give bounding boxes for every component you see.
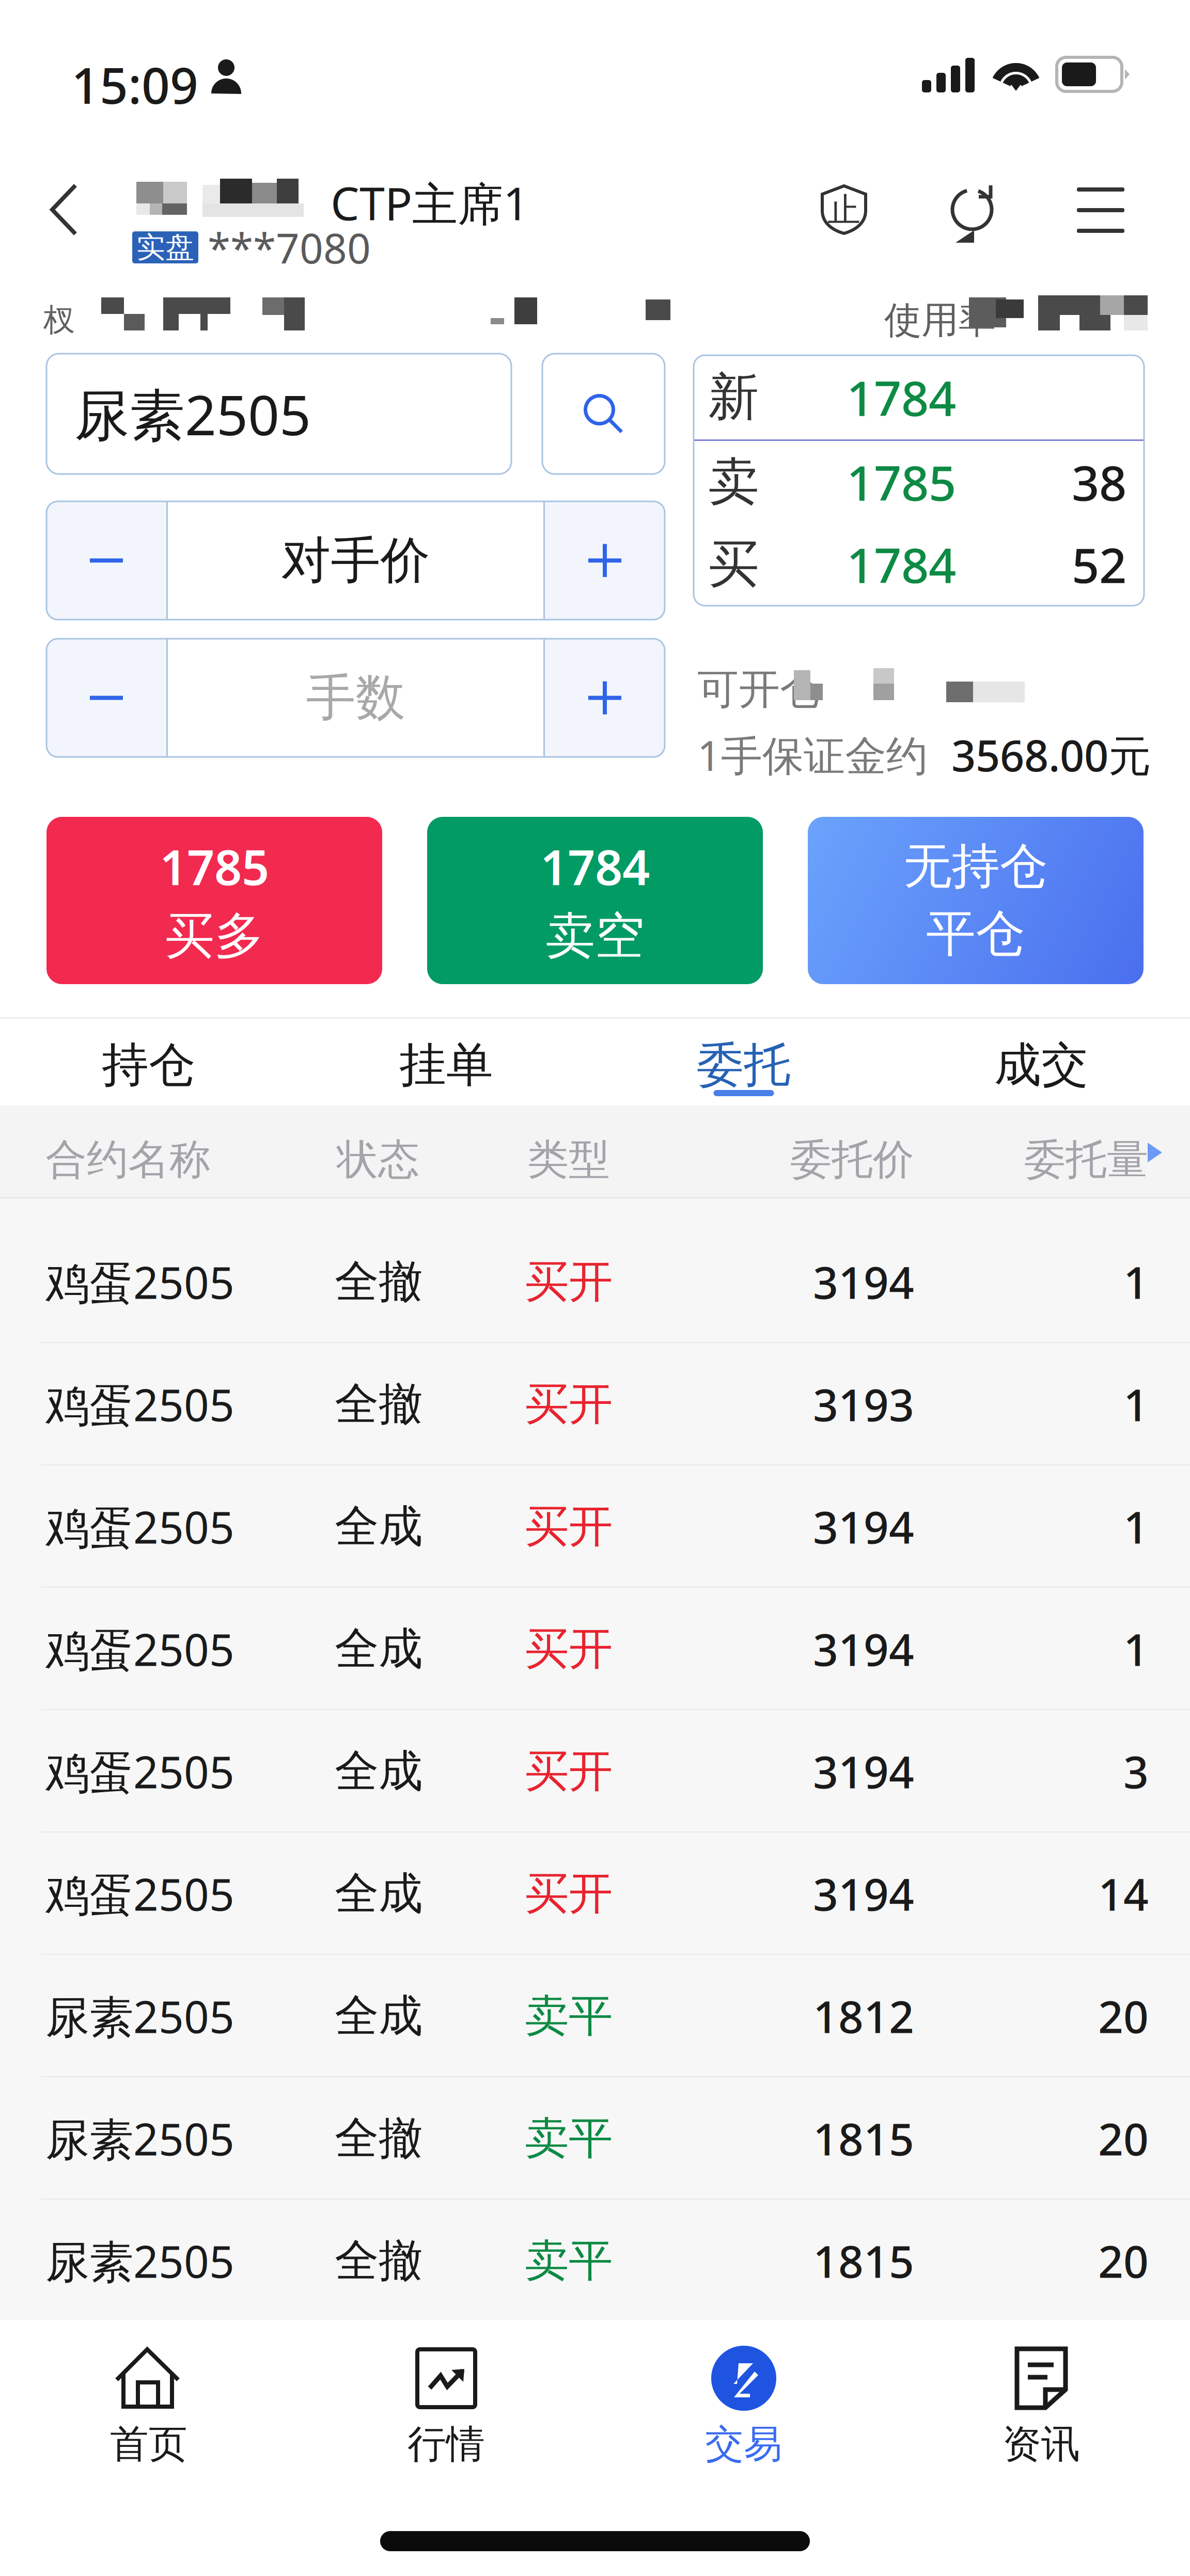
button[interactable]: 1785	[46, 817, 382, 984]
button[interactable]: 资讯	[892, 2320, 1190, 2495]
staticText: 1812	[813, 1987, 914, 2045]
button[interactable]: Decrease	[46, 501, 166, 620]
staticText: 全成	[335, 1989, 422, 2043]
staticText: 全撤	[335, 1255, 422, 1309]
button[interactable]: 鸡蛋2505	[0, 1710, 1190, 1832]
staticText: 尿素2505	[45, 2232, 234, 2290]
staticText: 14	[1098, 1864, 1149, 1923]
staticText: 3194	[813, 1864, 914, 1923]
button[interactable]: 行情	[297, 2320, 595, 2495]
staticText: 使用率	[884, 297, 996, 343]
button[interactable]: Refresh	[939, 170, 1008, 257]
button[interactable]: 无持仓	[808, 817, 1144, 984]
staticText: 对手价	[281, 530, 430, 591]
staticText: 38	[1072, 450, 1126, 514]
staticText: 无持仓	[904, 837, 1048, 896]
staticText: 成交	[994, 1036, 1088, 1094]
staticText: ***7080	[208, 220, 371, 275]
button[interactable]: Menu	[1062, 173, 1139, 247]
button[interactable]: 委托	[595, 1019, 892, 1105]
staticText: 鸡蛋2505	[45, 1497, 234, 1556]
staticText: 实盘	[136, 230, 194, 265]
staticText: 1815	[813, 2109, 914, 2168]
button[interactable]: 鸡蛋2505	[0, 1465, 1190, 1588]
staticText: 买	[708, 533, 759, 596]
staticText: 1	[1123, 1620, 1149, 1678]
staticText: 状态	[337, 1134, 419, 1185]
staticText: 20	[1098, 2232, 1149, 2290]
staticText: 类型	[527, 1134, 610, 1185]
staticText: 新	[708, 366, 759, 429]
staticText: 行情	[408, 2421, 485, 2468]
button[interactable]: Decrease	[46, 639, 166, 757]
button[interactable]: 1784	[427, 817, 763, 984]
staticText: 鸡蛋2505	[45, 1864, 234, 1923]
button[interactable]: Back	[33, 168, 95, 251]
staticText: 全撤	[335, 2111, 422, 2165]
staticText: 1手保证金约	[697, 727, 928, 782]
staticText: 买多	[165, 906, 264, 967]
staticText: 资讯	[1003, 2421, 1080, 2468]
button[interactable]: 鸡蛋2505	[0, 1832, 1190, 1955]
staticText: 买开	[525, 1622, 613, 1676]
staticText: 全成	[335, 1744, 422, 1798]
staticText: 买开	[525, 1377, 613, 1431]
staticText: 卖空	[545, 906, 645, 967]
staticText: 买开	[525, 1499, 613, 1554]
button[interactable]: Stop loss	[808, 171, 880, 248]
staticText: 买开	[525, 1744, 613, 1798]
button[interactable]: 交易	[595, 2320, 892, 2495]
button[interactable]: 鸡蛋2505	[0, 1343, 1190, 1465]
staticText: 1784	[847, 532, 956, 596]
staticText: CTP主席1	[331, 172, 529, 233]
staticText: 15:09	[71, 52, 198, 117]
staticText: 3194	[813, 1253, 914, 1311]
staticText: 3194	[813, 1497, 914, 1556]
button[interactable]: 鸡蛋2505	[0, 1221, 1190, 1343]
button[interactable]: Search	[542, 354, 665, 474]
staticText: 止	[827, 190, 860, 230]
button[interactable]: 尿素2505	[0, 2077, 1190, 2200]
button[interactable]: 尿素2505	[0, 1955, 1190, 2077]
button[interactable]: 挂单	[297, 1019, 595, 1105]
staticText: 杈	[43, 301, 75, 339]
button[interactable]: 鸡蛋2505	[0, 1588, 1190, 1710]
staticText: 全成	[335, 1499, 422, 1554]
staticText: 1785	[160, 834, 269, 898]
button[interactable]: Increase	[545, 501, 665, 620]
staticText: 委托	[697, 1036, 791, 1094]
staticText: 买开	[525, 1255, 613, 1309]
staticText: 1	[1123, 1375, 1149, 1433]
staticText: 平仓	[926, 903, 1025, 964]
staticText: 全成	[335, 1867, 422, 1921]
staticText: 1815	[813, 2232, 914, 2290]
staticText: 鸡蛋2505	[45, 1375, 234, 1433]
staticText: 卖平	[525, 1989, 613, 2043]
button[interactable]: 尿素2505	[0, 2200, 1190, 2322]
staticText: 尿素2505	[45, 1987, 234, 2045]
staticText: 可开仓	[697, 664, 821, 715]
staticText: 3193	[813, 1375, 914, 1433]
staticText: 全撤	[335, 2234, 422, 2288]
staticText: 3194	[813, 1742, 914, 1801]
button[interactable]: 持仓	[0, 1019, 297, 1105]
staticText: 20	[1098, 1987, 1149, 2045]
staticText: 卖	[708, 451, 759, 513]
staticText: 1785	[847, 450, 956, 514]
staticText: 全撤	[335, 1377, 422, 1431]
staticText: 卖平	[525, 2234, 613, 2288]
button[interactable]: Increase	[545, 639, 665, 757]
staticText: 手数	[306, 667, 405, 728]
staticText: 3	[1123, 1742, 1149, 1801]
staticText: 52	[1072, 532, 1126, 596]
staticText: 挂单	[399, 1036, 493, 1094]
staticText: 委托价	[790, 1134, 914, 1185]
button[interactable]: 首页	[0, 2320, 297, 2495]
staticText: 尿素2505	[45, 2109, 234, 2168]
button[interactable]: 成交	[892, 1019, 1190, 1105]
staticText: 交易	[705, 2421, 782, 2468]
staticText: 1	[1123, 1253, 1149, 1311]
staticText: 卖平	[525, 2111, 613, 2165]
staticText: 首页	[110, 2421, 187, 2468]
staticText: 3194	[813, 1620, 914, 1678]
